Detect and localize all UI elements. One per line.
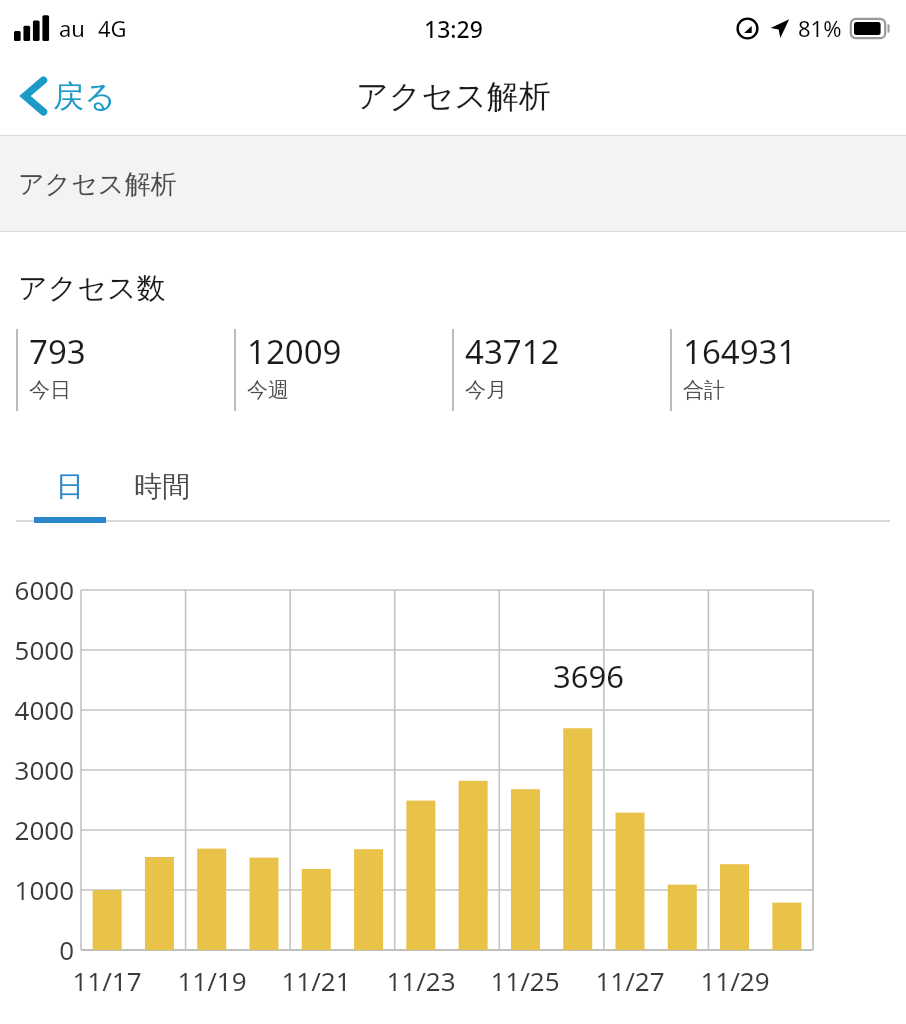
staticText: 今週 bbox=[247, 377, 289, 403]
staticText: 3000 bbox=[14, 752, 74, 787]
staticText: 日 bbox=[56, 469, 84, 504]
other: Rotation lock bbox=[736, 17, 759, 40]
staticText: アクセス解析 bbox=[18, 168, 177, 201]
staticText: 11/23 bbox=[386, 963, 456, 998]
button[interactable]: 43712 bbox=[452, 329, 670, 411]
staticText: 3696 bbox=[553, 655, 624, 697]
staticText: 戻る bbox=[53, 77, 116, 116]
staticText: 時間 bbox=[134, 469, 190, 504]
button[interactable]: 時間 bbox=[120, 455, 204, 517]
staticText: 4G bbox=[98, 13, 127, 43]
staticText: アクセス数 bbox=[18, 270, 166, 307]
button[interactable]: 12009 bbox=[234, 329, 452, 411]
staticText: 11/17 bbox=[72, 963, 142, 998]
button[interactable]: 793 bbox=[16, 329, 234, 411]
staticText: 11/25 bbox=[490, 963, 560, 998]
staticText: 5000 bbox=[14, 632, 74, 667]
staticText: 6000 bbox=[14, 572, 74, 607]
staticText: 11/19 bbox=[177, 963, 247, 998]
staticText: 164931 bbox=[683, 329, 797, 374]
staticText: au bbox=[59, 13, 85, 43]
staticText: 合計 bbox=[683, 377, 725, 403]
staticText: 4000 bbox=[14, 692, 74, 727]
staticText: 13:29 bbox=[424, 13, 483, 44]
staticText: 81% bbox=[798, 13, 842, 43]
staticText: 11/29 bbox=[700, 963, 770, 998]
staticText: 0 bbox=[59, 932, 74, 967]
staticText: 11/27 bbox=[595, 963, 665, 998]
button[interactable]: 日 bbox=[34, 455, 106, 517]
button[interactable]: 164931 bbox=[670, 329, 888, 411]
staticText: 1000 bbox=[14, 872, 74, 907]
button[interactable]: 戻る bbox=[0, 64, 134, 128]
other: Location bbox=[769, 18, 790, 39]
staticText: 11/21 bbox=[281, 963, 351, 998]
staticText: 12009 bbox=[247, 329, 342, 374]
staticText: 今日 bbox=[29, 377, 71, 403]
staticText: 今月 bbox=[465, 377, 507, 403]
staticText: 43712 bbox=[465, 329, 560, 374]
staticText: 2000 bbox=[14, 812, 74, 847]
staticText: 793 bbox=[29, 329, 86, 374]
staticText: アクセス解析 bbox=[356, 76, 551, 116]
